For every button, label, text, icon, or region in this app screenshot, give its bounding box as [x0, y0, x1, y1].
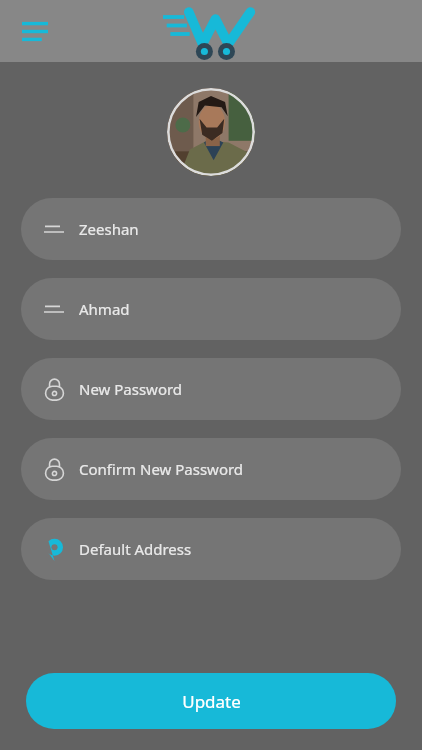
- staticText: Ahmad: [79, 299, 130, 319]
- button[interactable]: Update: [26, 673, 396, 729]
- button[interactable]: Menu: [12, 8, 58, 54]
- staticText: Confirm New Password: [79, 459, 244, 479]
- button[interactable]: Profile photo: [167, 88, 255, 176]
- button[interactable]: Zeeshan: [21, 198, 401, 260]
- button[interactable]: New Password: [21, 358, 401, 420]
- button[interactable]: Confirm New Password: [21, 438, 401, 500]
- staticText: Update: [182, 690, 241, 713]
- button[interactable]: App logo: [161, 7, 257, 61]
- staticText: New Password: [79, 379, 183, 399]
- button[interactable]: Default Address: [21, 518, 401, 580]
- staticText: Zeeshan: [79, 219, 139, 239]
- staticText: Default Address: [79, 539, 192, 559]
- button[interactable]: Ahmad: [21, 278, 401, 340]
